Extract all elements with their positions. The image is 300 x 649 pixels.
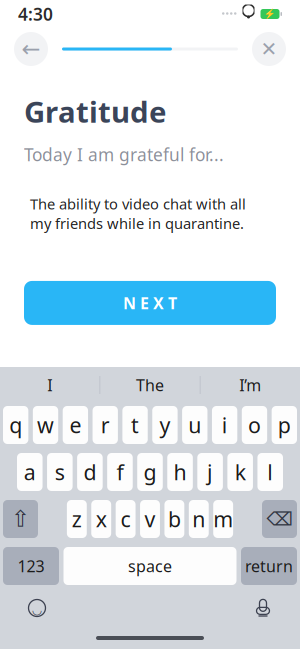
staticText: 4:30 <box>18 2 53 25</box>
button[interactable]: I’m <box>201 367 300 403</box>
button[interactable]: c <box>116 500 136 538</box>
staticText: y <box>159 411 170 439</box>
button[interactable]: Shift <box>3 500 38 538</box>
staticText: p <box>278 411 291 439</box>
staticText: I <box>47 374 52 396</box>
staticText: ✕ <box>260 38 277 60</box>
staticText: k <box>235 458 246 486</box>
button[interactable]: u <box>182 406 207 444</box>
staticText: Gratitude <box>24 92 167 131</box>
staticText: a <box>24 458 36 486</box>
button[interactable]: Delete <box>262 500 297 538</box>
button[interactable]: r <box>93 406 118 444</box>
staticText: q <box>9 411 22 439</box>
button[interactable]: b <box>164 500 184 538</box>
button[interactable]: 123 <box>3 547 59 585</box>
staticText: g <box>143 458 156 486</box>
staticText: i <box>222 411 228 439</box>
staticText: ⚡ <box>264 9 276 19</box>
staticText: m <box>213 505 233 533</box>
staticText: The ability to video chat with all my fr… <box>30 194 246 233</box>
staticText: j <box>207 458 213 486</box>
button[interactable]: space <box>63 547 236 585</box>
button[interactable]: q <box>3 406 28 444</box>
button[interactable]: p <box>272 406 297 444</box>
button[interactable]: a <box>17 453 43 491</box>
button[interactable]: Dictation <box>246 591 280 625</box>
button[interactable]: j <box>197 453 223 491</box>
button[interactable]: e <box>63 406 88 444</box>
button[interactable]: h <box>167 453 193 491</box>
staticText: 123 <box>17 555 44 577</box>
button[interactable]: I <box>0 367 99 403</box>
staticText: return <box>245 555 293 577</box>
staticText: n <box>192 505 205 533</box>
staticText: w <box>37 411 54 439</box>
staticText: ⇧ <box>11 506 30 532</box>
button[interactable]: Close <box>252 32 286 66</box>
button[interactable]: y <box>152 406 178 444</box>
button[interactable]: m <box>213 500 233 538</box>
staticText: The <box>136 374 164 396</box>
button[interactable]: Emoji <box>20 591 54 625</box>
staticText: r <box>101 411 110 439</box>
staticText: d <box>83 458 96 486</box>
staticText: v <box>144 505 155 533</box>
button[interactable]: z <box>67 500 87 538</box>
staticText: o <box>248 411 261 439</box>
button[interactable]: k <box>227 453 253 491</box>
staticText: b <box>168 505 181 533</box>
staticText: Today I am grateful for... <box>24 143 224 166</box>
staticText: space <box>128 555 172 577</box>
button[interactable]: t <box>122 406 148 444</box>
button[interactable]: l <box>257 453 283 491</box>
button[interactable]: s <box>47 453 73 491</box>
staticText: e <box>69 411 81 439</box>
staticText: s <box>55 458 65 486</box>
staticText: c <box>121 505 131 533</box>
staticText: ⌫ <box>266 508 292 530</box>
button[interactable]: i <box>212 406 237 444</box>
button[interactable]: The <box>100 367 200 403</box>
staticText: h <box>174 458 187 486</box>
button[interactable]: g <box>137 453 163 491</box>
staticText: t <box>131 411 139 439</box>
staticText: I’m <box>239 374 261 396</box>
button[interactable]: v <box>140 500 160 538</box>
staticText: ◡ <box>32 603 41 616</box>
button[interactable]: o <box>242 406 267 444</box>
button[interactable]: return <box>241 547 297 585</box>
button[interactable]: n <box>189 500 209 538</box>
staticText: f <box>116 458 123 486</box>
staticText: l <box>267 458 273 486</box>
button[interactable]: w <box>33 406 58 444</box>
button[interactable]: Back <box>14 32 48 66</box>
staticText: z <box>72 505 82 533</box>
button[interactable]: x <box>91 500 111 538</box>
staticText: N E X T <box>123 292 177 313</box>
button[interactable]: N E X T <box>24 281 276 325</box>
staticText: u <box>188 411 201 439</box>
staticText: x <box>96 505 107 533</box>
button[interactable]: d <box>77 453 103 491</box>
button[interactable]: f <box>107 453 133 491</box>
staticText: ← <box>21 36 40 62</box>
